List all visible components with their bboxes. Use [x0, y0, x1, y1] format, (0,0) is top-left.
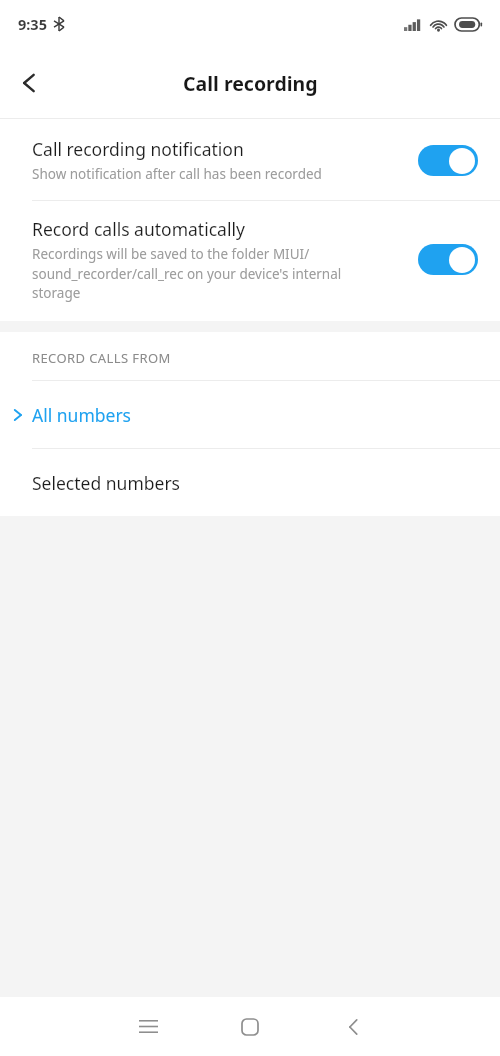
button[interactable]: Toggle: [418, 145, 478, 176]
button[interactable]: Selected numbers: [0, 449, 500, 516]
button[interactable]: Record calls automatically: [0, 201, 500, 321]
button[interactable]: Recents: [118, 997, 178, 1056]
button[interactable]: Home: [220, 997, 280, 1056]
staticText: RECORD CALLS FROM: [32, 349, 171, 367]
button[interactable]: All numbers: [0, 381, 500, 448]
staticText: 9:35: [18, 14, 47, 34]
staticText: Call recording notification: [32, 137, 244, 161]
button[interactable]: Back: [323, 997, 383, 1056]
staticText: Selected numbers: [32, 471, 180, 495]
staticText: Show notification after call has been re…: [32, 165, 322, 183]
button[interactable]: Back: [0, 54, 58, 112]
staticText: Call recording: [183, 70, 318, 97]
staticText: Recordings will be saved to the folder M…: [32, 245, 342, 302]
staticText: Record calls automatically: [32, 217, 245, 241]
button[interactable]: Toggle: [418, 244, 478, 275]
staticText: All numbers: [32, 403, 131, 427]
button[interactable]: Call recording notification: [0, 119, 500, 200]
